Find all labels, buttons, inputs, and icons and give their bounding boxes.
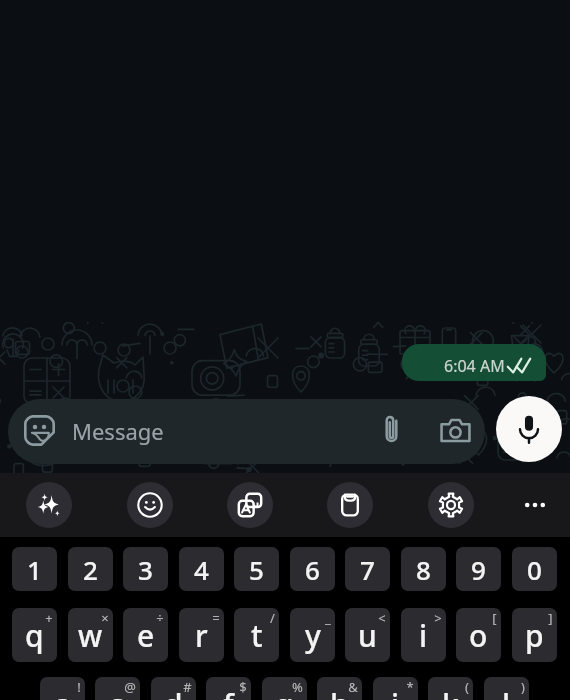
staticText: * — [406, 678, 414, 696]
button[interactable]: 6:04 AM — [402, 344, 546, 381]
button[interactable]: i — [401, 608, 446, 662]
button[interactable]: 5 — [234, 547, 279, 591]
staticText: × — [101, 609, 109, 627]
staticText: Message — [72, 416, 164, 446]
staticText: 6 — [305, 552, 320, 587]
staticText: u — [358, 615, 377, 656]
button[interactable]: Tool 4 — [428, 482, 474, 528]
staticText: g — [275, 684, 294, 700]
staticText: % — [292, 678, 303, 696]
button[interactable]: a — [40, 677, 85, 700]
button[interactable]: 6 — [290, 547, 335, 591]
button[interactable]: More — [512, 482, 558, 528]
staticText: 2 — [83, 552, 98, 587]
button[interactable]: 8 — [401, 547, 446, 591]
button[interactable]: Voice message — [496, 396, 562, 462]
button[interactable]: Tool 1 — [127, 482, 173, 528]
button[interactable]: f — [206, 677, 251, 700]
staticText: 6:04 AM — [444, 355, 505, 377]
staticText: 0 — [527, 552, 542, 587]
staticText: k — [442, 684, 459, 700]
staticText: ( — [465, 678, 469, 696]
button[interactable]: Stickers — [24, 415, 55, 446]
button[interactable]: k — [428, 677, 473, 700]
button[interactable]: y — [290, 608, 335, 662]
button[interactable]: Tool 0 — [26, 482, 72, 528]
button[interactable]: q — [12, 608, 57, 662]
staticText: l — [502, 684, 511, 700]
staticText: & — [348, 678, 358, 696]
staticText: i — [419, 615, 428, 656]
staticText: s — [110, 684, 125, 700]
button[interactable]: s — [95, 677, 140, 700]
button[interactable]: Stickers — [8, 399, 485, 464]
staticText: / — [270, 609, 275, 627]
button[interactable]: t — [234, 608, 279, 662]
button[interactable]: l — [484, 677, 529, 700]
button[interactable]: j — [373, 677, 418, 700]
staticText: e — [137, 615, 155, 656]
button[interactable]: w — [68, 608, 113, 662]
staticText: j — [391, 684, 400, 700]
button[interactable]: e — [123, 608, 168, 662]
button[interactable]: 1 — [12, 547, 57, 591]
staticText: 5 — [249, 552, 264, 587]
button[interactable]: o — [456, 608, 501, 662]
staticText: ] — [548, 609, 553, 627]
staticText: ) — [521, 678, 525, 696]
button[interactable]: r — [179, 608, 224, 662]
staticText: r — [195, 615, 208, 656]
staticText: f — [223, 684, 234, 700]
staticText: ÷ — [156, 609, 164, 627]
staticText: h — [330, 684, 349, 700]
button[interactable]: 4 — [179, 547, 224, 591]
staticText: @ — [124, 678, 136, 696]
staticText: t — [251, 615, 263, 656]
staticText: _ — [325, 609, 331, 627]
button[interactable]: u — [345, 608, 390, 662]
button[interactable]: p — [512, 608, 557, 662]
staticText: [ — [492, 609, 497, 627]
staticText: w — [78, 615, 103, 656]
button[interactable]: Tool 2 — [227, 482, 273, 528]
button[interactable]: d — [151, 677, 196, 700]
button[interactable]: g — [262, 677, 307, 700]
staticText: > — [434, 609, 442, 627]
staticText: $ — [239, 678, 247, 696]
staticText: # — [183, 678, 192, 696]
button[interactable]: 0 — [512, 547, 557, 591]
staticText: 3 — [138, 552, 153, 587]
staticText: a — [54, 684, 72, 700]
button[interactable]: h — [317, 677, 362, 700]
staticText: = — [212, 609, 220, 627]
staticText: 8 — [416, 552, 431, 587]
staticText: 1 — [27, 552, 42, 587]
staticText: d — [164, 684, 183, 700]
button[interactable]: Tool 3 — [327, 482, 373, 528]
staticText: y — [305, 615, 321, 656]
button[interactable]: 3 — [123, 547, 168, 591]
staticText: 9 — [471, 552, 486, 587]
button[interactable]: Camera — [440, 415, 471, 446]
staticText: < — [378, 609, 386, 627]
staticText: p — [525, 615, 544, 656]
staticText: + — [45, 609, 53, 627]
staticText: q — [25, 615, 44, 656]
button[interactable]: 2 — [68, 547, 113, 591]
button[interactable]: 9 — [456, 547, 501, 591]
staticText: o — [469, 615, 488, 656]
staticText: 7 — [360, 552, 375, 587]
button[interactable]: 7 — [345, 547, 390, 591]
staticText: 4 — [194, 552, 209, 587]
staticText: ! — [77, 678, 81, 696]
button[interactable]: Attach — [376, 414, 407, 445]
